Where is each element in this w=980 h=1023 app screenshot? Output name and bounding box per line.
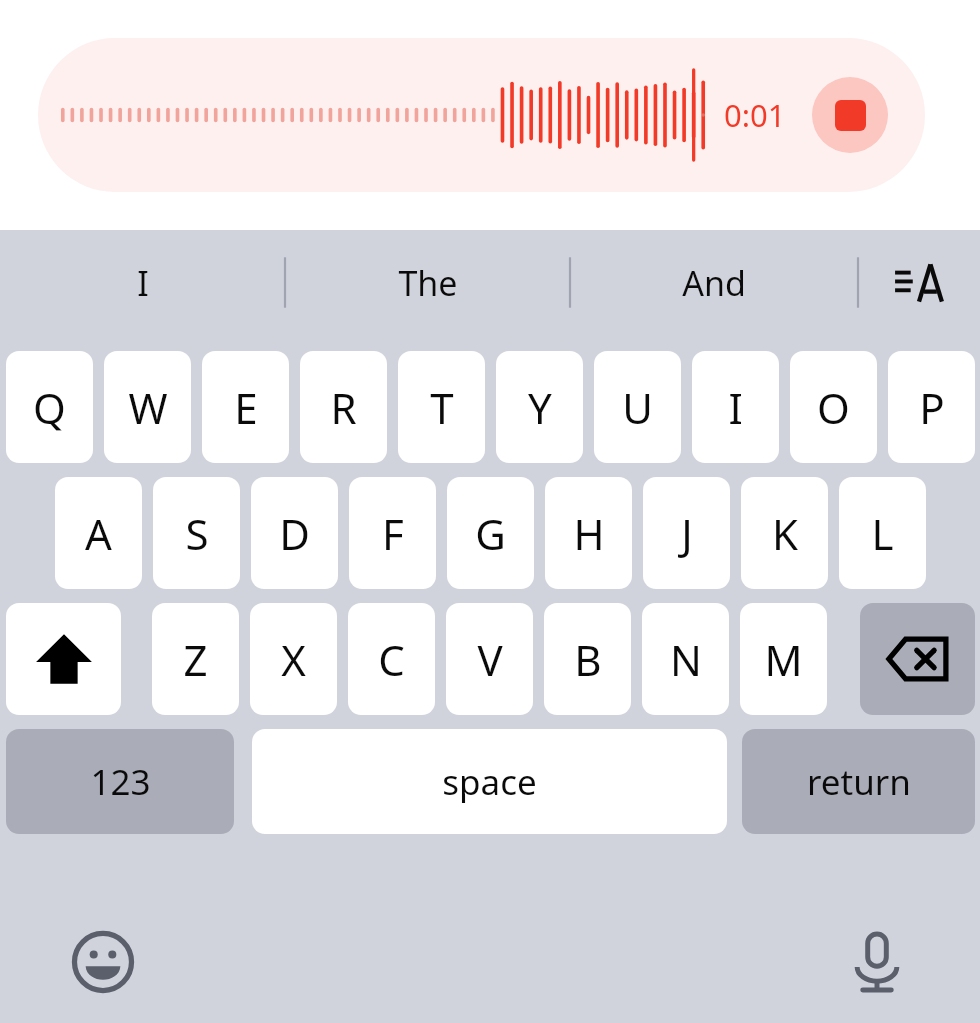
- button[interactable]: Emoji: [60, 919, 146, 1005]
- button[interactable]: Y: [496, 351, 583, 463]
- staticText: Q: [33, 379, 66, 436]
- staticText: return: [807, 758, 911, 806]
- staticText: M: [764, 631, 803, 688]
- staticText: I: [137, 260, 149, 306]
- staticText: W: [128, 379, 168, 436]
- staticText: J: [681, 505, 693, 562]
- button[interactable]: A: [55, 477, 142, 589]
- staticText: And: [682, 260, 746, 306]
- button[interactable]: K: [741, 477, 828, 589]
- button[interactable]: I: [0, 230, 285, 335]
- button[interactable]: F: [349, 477, 436, 589]
- button[interactable]: D: [251, 477, 338, 589]
- staticText: H: [573, 505, 605, 562]
- staticText: R: [330, 379, 357, 436]
- button[interactable]: E: [202, 351, 289, 463]
- button[interactable]: H: [545, 477, 632, 589]
- button[interactable]: And: [570, 230, 858, 335]
- button[interactable]: N: [642, 603, 729, 715]
- button[interactable]: R: [300, 351, 387, 463]
- button[interactable]: V: [446, 603, 533, 715]
- button[interactable]: U: [594, 351, 681, 463]
- staticText: K: [772, 505, 798, 562]
- button[interactable]: Dictation: [834, 919, 920, 1005]
- staticText: F: [382, 505, 404, 562]
- button[interactable]: Z: [152, 603, 239, 715]
- button[interactable]: 123: [6, 729, 234, 834]
- staticText: 0:01: [724, 94, 786, 136]
- button[interactable]: 0:01: [38, 38, 925, 192]
- button[interactable]: Shift: [6, 603, 121, 715]
- button[interactable]: Backspace: [860, 603, 975, 715]
- staticText: G: [475, 505, 506, 562]
- button[interactable]: The: [285, 230, 570, 335]
- staticText: P: [919, 379, 945, 436]
- button[interactable]: B: [544, 603, 631, 715]
- button[interactable]: M: [740, 603, 827, 715]
- staticText: Z: [183, 631, 208, 688]
- staticText: S: [185, 505, 209, 562]
- staticText: I: [728, 379, 743, 436]
- staticText: X: [281, 631, 306, 688]
- staticText: B: [574, 631, 602, 688]
- staticText: U: [622, 379, 653, 436]
- staticText: 123: [90, 758, 151, 806]
- button[interactable]: C: [348, 603, 435, 715]
- button[interactable]: O: [790, 351, 877, 463]
- button[interactable]: Predictive text: [858, 230, 980, 335]
- staticText: Y: [528, 379, 552, 436]
- button[interactable]: Q: [6, 351, 93, 463]
- staticText: N: [670, 631, 702, 688]
- button[interactable]: L: [839, 477, 926, 589]
- button[interactable]: return: [742, 729, 975, 834]
- staticText: space: [442, 758, 537, 806]
- staticText: A: [85, 505, 112, 562]
- staticText: L: [871, 505, 894, 562]
- button[interactable]: S: [153, 477, 240, 589]
- staticText: C: [378, 631, 405, 688]
- button[interactable]: space: [252, 729, 727, 834]
- staticText: V: [477, 631, 503, 688]
- button[interactable]: I: [692, 351, 779, 463]
- button[interactable]: J: [643, 477, 730, 589]
- staticText: O: [817, 379, 850, 436]
- staticText: The: [398, 260, 458, 306]
- button[interactable]: Stop recording: [812, 77, 888, 153]
- button[interactable]: P: [888, 351, 975, 463]
- button[interactable]: W: [104, 351, 191, 463]
- button[interactable]: G: [447, 477, 534, 589]
- staticText: D: [279, 505, 310, 562]
- staticText: E: [234, 379, 258, 436]
- button[interactable]: T: [398, 351, 485, 463]
- button[interactable]: X: [250, 603, 337, 715]
- staticText: T: [430, 379, 454, 436]
